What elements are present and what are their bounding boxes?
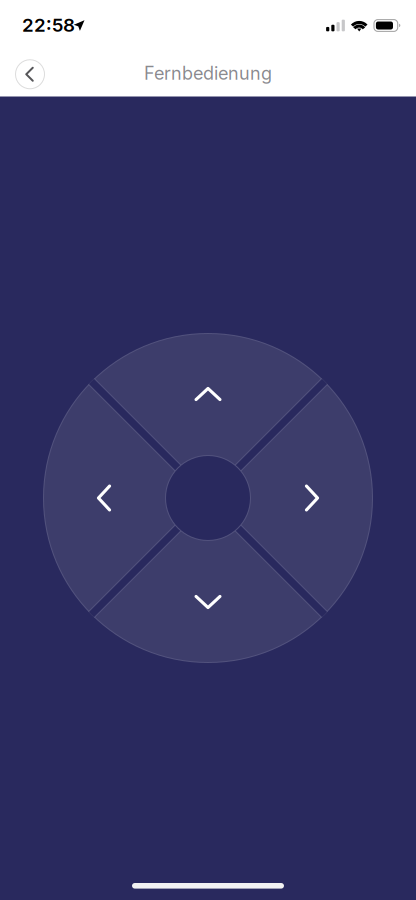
button[interactable]: Down — [160, 565, 256, 639]
button[interactable]: Left — [67, 450, 141, 546]
staticText: 22:58 — [22, 14, 75, 36]
staticText: Fernbedienung — [144, 62, 272, 84]
button[interactable]: Up — [160, 357, 256, 431]
button[interactable]: Right — [275, 450, 349, 546]
button[interactable]: Back — [8, 52, 52, 95]
button[interactable]: OK — [166, 456, 250, 540]
